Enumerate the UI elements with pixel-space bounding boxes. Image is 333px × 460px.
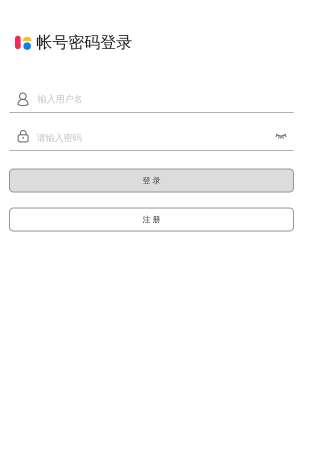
- staticText: 登 录: [142, 176, 160, 185]
- button[interactable]: 登 录: [9, 169, 293, 192]
- staticText: 输入用户名: [38, 93, 83, 105]
- staticText: 帐号密码登录: [36, 33, 132, 52]
- staticText: 请输入密码: [37, 132, 82, 144]
- button[interactable]: 显示密码: [271, 128, 291, 144]
- staticText: 注 册: [142, 215, 160, 224]
- button[interactable]: 注 册: [9, 208, 293, 231]
